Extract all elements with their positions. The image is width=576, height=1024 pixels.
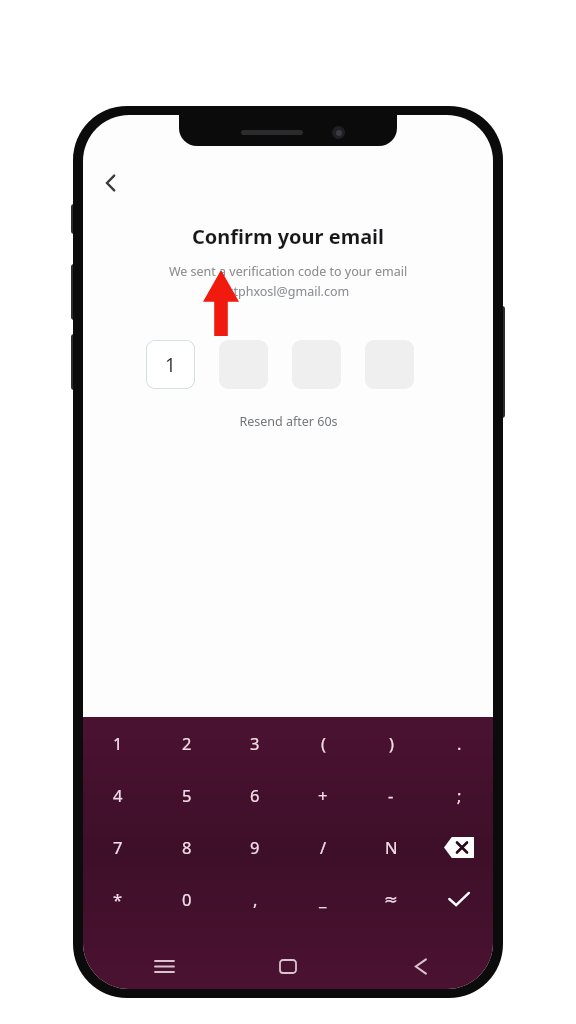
staticText: 4 xyxy=(113,784,123,806)
button[interactable]: Resend after 60s xyxy=(239,413,338,430)
staticText: 7 xyxy=(113,836,123,858)
button[interactable]: 3 xyxy=(221,717,289,769)
staticText: We sent a verification code to your emai… xyxy=(83,263,493,280)
staticText: 0 xyxy=(182,888,192,910)
staticText: _ xyxy=(319,888,327,910)
staticText: 3 xyxy=(250,732,260,754)
button[interactable]: / xyxy=(289,821,357,873)
button[interactable]: ≈ xyxy=(357,873,425,925)
staticText: ; xyxy=(457,784,462,806)
staticText: Confirm your email xyxy=(83,223,493,250)
button[interactable]: 1 xyxy=(83,717,152,769)
staticText: , xyxy=(253,888,258,910)
button[interactable]: 4 xyxy=(83,769,152,821)
button[interactable]: _ xyxy=(289,873,357,925)
staticText: 9 xyxy=(250,836,260,858)
button[interactable]: Recent apps xyxy=(141,943,187,989)
staticText: 5 xyxy=(182,784,192,806)
button[interactable]: ; xyxy=(425,769,493,821)
button[interactable]: 0 xyxy=(152,873,221,925)
button[interactable]: 2 xyxy=(152,717,221,769)
staticText: 2 xyxy=(182,732,192,754)
button[interactable]: 5 xyxy=(152,769,221,821)
button[interactable]: + xyxy=(289,769,357,821)
button[interactable]: 6 xyxy=(221,769,289,821)
button[interactable]: Done xyxy=(425,873,493,925)
button[interactable]: ( xyxy=(289,717,357,769)
button[interactable]: ) xyxy=(357,717,425,769)
staticText: Resend after 60s xyxy=(239,413,338,430)
staticText: / xyxy=(320,836,327,858)
staticText: * xyxy=(113,888,123,910)
button[interactable]: 7 xyxy=(83,821,152,873)
staticText: - xyxy=(388,784,394,806)
staticText: ktphxosl@gmail.com xyxy=(83,283,493,300)
staticText: 1 xyxy=(113,732,123,754)
button[interactable]: Back xyxy=(89,161,133,205)
button[interactable]: 9 xyxy=(221,821,289,873)
button[interactable]: 8 xyxy=(152,821,221,873)
staticText: 6 xyxy=(250,784,260,806)
button[interactable]: Home xyxy=(265,943,311,989)
button[interactable]: Code digit xyxy=(146,340,195,389)
staticText: N xyxy=(385,836,398,858)
button[interactable]: Backspace xyxy=(425,821,493,873)
button[interactable]: * xyxy=(83,873,152,925)
staticText: . xyxy=(457,732,462,754)
button[interactable]: , xyxy=(221,873,289,925)
button[interactable]: - xyxy=(357,769,425,821)
staticText: ) xyxy=(389,732,394,754)
staticText: ( xyxy=(321,732,326,754)
staticText: 1 xyxy=(165,352,176,378)
staticText: + xyxy=(318,784,328,806)
staticText: ≈ xyxy=(384,890,398,909)
staticText: 8 xyxy=(182,836,192,858)
button[interactable]: Back xyxy=(397,943,443,989)
button[interactable]: N xyxy=(357,821,425,873)
button[interactable]: . xyxy=(425,717,493,769)
